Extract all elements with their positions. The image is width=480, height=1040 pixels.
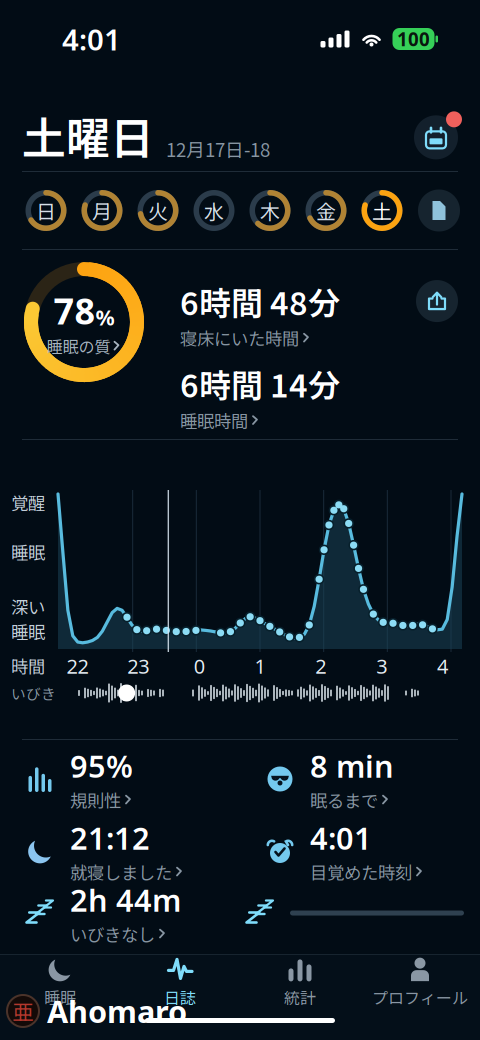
staticText: いびきなし — [70, 921, 155, 946]
staticText: 睡眠 — [44, 985, 76, 1009]
staticText: 月 — [92, 196, 112, 225]
staticText: 統計 — [284, 985, 316, 1009]
staticText: 日誌 — [164, 985, 196, 1009]
button[interactable]: 日誌 — [120, 955, 240, 1009]
button[interactable]: Sleep quality 78 percent — [22, 260, 146, 384]
button[interactable]: 月 — [74, 184, 130, 236]
staticText: 深い — [11, 594, 45, 619]
button[interactable]: 金 — [298, 184, 354, 236]
staticText: 土 — [372, 196, 392, 225]
button[interactable]: プロフィール — [360, 955, 480, 1009]
button[interactable]: 8 min — [240, 749, 480, 809]
staticText: 95% — [70, 746, 133, 786]
staticText: 亜 — [12, 996, 33, 1026]
staticText: 金 — [316, 196, 336, 225]
button[interactable]: 95% — [0, 749, 240, 809]
staticText: プロフィール — [372, 985, 468, 1009]
staticText: 22 — [66, 653, 88, 679]
staticText: 6時間 14分 — [180, 360, 340, 407]
staticText: 2h 44m — [70, 880, 181, 920]
button[interactable]: Share — [414, 278, 460, 324]
staticText: 4:01 — [62, 19, 121, 58]
button[interactable]: 火 — [130, 184, 186, 236]
staticText: 1 — [254, 653, 265, 679]
button[interactable]: 2h 44m — [0, 883, 240, 943]
staticText: % — [95, 303, 114, 331]
staticText: 目覚めた時刻 — [310, 859, 412, 884]
button[interactable]: Calendar — [410, 111, 462, 167]
staticText: Ahomaro — [47, 991, 187, 1031]
staticText: 火 — [148, 196, 168, 225]
button[interactable]: 6時間 48分 — [180, 278, 340, 350]
staticText: 寝床にいた時間 — [180, 325, 299, 350]
staticText: 6時間 48分 — [180, 278, 340, 324]
staticText: 100 — [397, 27, 430, 51]
button[interactable]: 木 — [242, 184, 298, 236]
staticText: 4:01 — [310, 818, 372, 858]
button[interactable]: 睡眠 — [0, 955, 120, 1009]
button[interactable]: 6時間 14分 — [180, 360, 340, 433]
staticText: 日 — [36, 196, 56, 225]
staticText: 睡眠 — [11, 619, 45, 644]
staticText: 睡眠の質 — [46, 334, 110, 358]
staticText: 覚醒 — [11, 490, 45, 515]
button[interactable]: 21:12 — [0, 821, 240, 881]
staticText: 2 — [315, 653, 326, 679]
staticText: 就寝しました — [70, 859, 172, 884]
staticText: 睡眠時間 — [180, 408, 248, 433]
staticText: 4 — [437, 653, 448, 679]
staticText: 78 — [53, 287, 95, 334]
staticText: いびき — [11, 682, 56, 704]
staticText: 木 — [260, 196, 280, 225]
button[interactable]: Notes — [416, 187, 462, 233]
button[interactable]: 4:01 — [240, 821, 480, 881]
staticText: 0 — [194, 653, 205, 679]
button[interactable]: 水 — [186, 184, 242, 236]
staticText: 規則性 — [70, 787, 121, 812]
staticText: 水 — [204, 196, 224, 225]
staticText: 時間 — [11, 653, 45, 679]
staticText: 12月17日-18 — [166, 135, 270, 162]
button[interactable]: 統計 — [240, 955, 360, 1009]
staticText: 23 — [127, 653, 149, 679]
button[interactable]: 日 — [18, 184, 74, 236]
staticText: 睡眠 — [11, 539, 45, 564]
staticText: 3 — [376, 653, 387, 679]
staticText: 21:12 — [70, 818, 150, 858]
staticText: 土曜日 — [22, 104, 154, 167]
button[interactable]: 土 — [354, 184, 410, 236]
staticText: 眠るまで — [310, 787, 378, 812]
staticText: 8 min — [310, 746, 394, 786]
